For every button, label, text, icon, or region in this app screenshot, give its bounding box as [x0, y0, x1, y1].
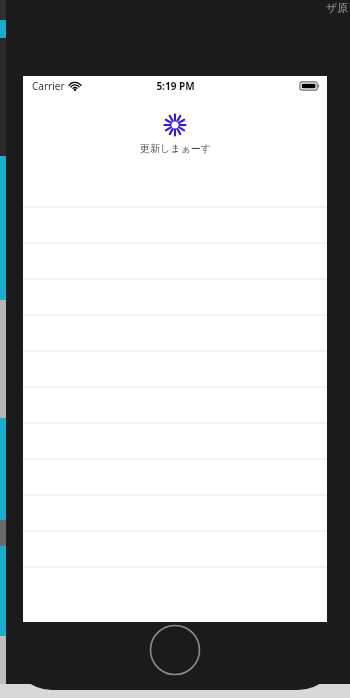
staticText: Carrier — [32, 79, 65, 93]
button[interactable]: Home — [149, 624, 201, 676]
staticText: ザ原 — [326, 1, 349, 15]
staticText: 5:19 PM — [156, 79, 195, 93]
staticText: 更新しまぁーす — [140, 142, 211, 155]
